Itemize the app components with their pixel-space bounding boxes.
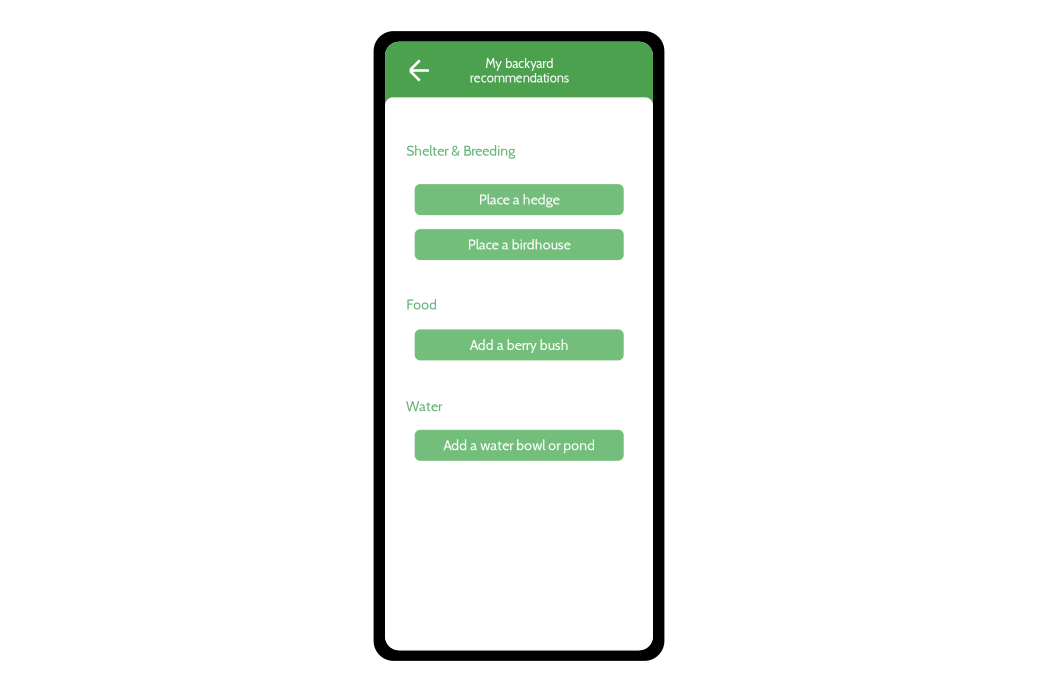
button[interactable]: Back bbox=[402, 54, 436, 88]
staticText: Add a water bowl or pond bbox=[443, 437, 595, 454]
staticText: Food bbox=[406, 296, 437, 313]
staticText: Place a birdhouse bbox=[468, 236, 571, 253]
button[interactable]: Add a berry bush bbox=[415, 329, 624, 360]
staticText: My backyard recommendations bbox=[469, 56, 568, 86]
button[interactable]: Add a water bowl or pond bbox=[415, 430, 624, 461]
button[interactable]: Place a hedge bbox=[415, 184, 624, 215]
staticText: Add a berry bush bbox=[470, 336, 569, 353]
staticText: Place a hedge bbox=[479, 191, 560, 208]
staticText: Water bbox=[406, 398, 442, 415]
button[interactable]: Place a birdhouse bbox=[415, 229, 624, 260]
staticText: Shelter & Breeding bbox=[406, 142, 515, 159]
